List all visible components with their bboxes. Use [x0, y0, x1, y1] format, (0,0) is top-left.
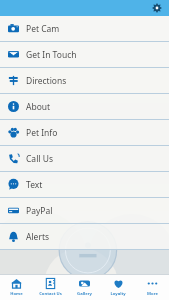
button[interactable]: Settings: [150, 1, 164, 15]
button[interactable]: About: [0, 94, 169, 119]
staticText: About: [26, 101, 51, 113]
staticText: Pet Info: [26, 127, 58, 139]
button[interactable]: Loyalty: [101, 275, 135, 300]
button[interactable]: More: [135, 275, 169, 300]
staticText: Get In Touch: [26, 49, 77, 61]
button[interactable]: Text: [0, 172, 169, 197]
button[interactable]: Call Us: [0, 146, 169, 171]
button[interactable]: Pet Cam: [0, 16, 169, 41]
button[interactable]: PayPal: [0, 198, 169, 223]
staticText: Contact Us: [39, 291, 62, 297]
staticText: Loyalty: [110, 291, 126, 297]
button[interactable]: Pet Info: [0, 120, 169, 145]
button[interactable]: Gallery: [67, 275, 101, 300]
staticText: Call Us: [26, 153, 54, 165]
staticText: Pet Cam: [26, 23, 60, 35]
staticText: Directions: [26, 75, 67, 87]
staticText: Text: [26, 179, 43, 191]
button[interactable]: Alerts: [0, 224, 169, 249]
button[interactable]: Contact Us: [33, 275, 67, 300]
staticText: More: [147, 291, 158, 297]
staticText: Alerts: [26, 231, 50, 243]
button[interactable]: Directions: [0, 68, 169, 93]
button[interactable]: Home: [0, 275, 33, 300]
staticText: PayPal: [26, 205, 53, 217]
staticText: Gallery: [77, 291, 92, 297]
staticText: Home: [10, 291, 23, 297]
button[interactable]: Get In Touch: [0, 42, 169, 67]
